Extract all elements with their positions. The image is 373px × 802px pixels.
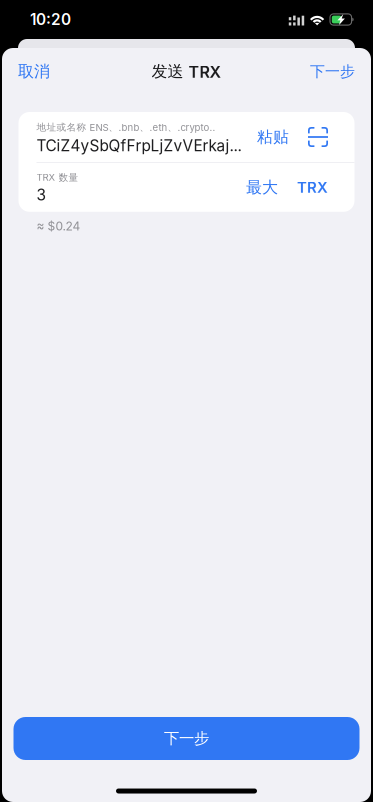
staticText: TCiZ4ySbQfFrpLjZvVErkaj... xyxy=(36,136,241,155)
button[interactable]: 下一步 xyxy=(294,52,371,91)
staticText: 下一步 xyxy=(164,729,209,748)
staticText: 3 xyxy=(36,186,45,204)
staticText: TRX 数量 xyxy=(36,171,78,184)
staticText: 取消 xyxy=(18,61,50,82)
staticText: TRX xyxy=(297,178,328,196)
staticText: 下一步 xyxy=(310,62,355,81)
button[interactable]: 取消 xyxy=(2,51,66,92)
button[interactable]: 粘贴 xyxy=(257,127,289,147)
staticText: ≈ $0.24 xyxy=(36,219,80,233)
button[interactable]: 扫描二维码 xyxy=(289,127,328,147)
staticText: 粘贴 xyxy=(257,127,289,147)
staticText: 地址或名称 ENS、.bnb、.eth、.crypto.. xyxy=(36,121,215,133)
staticText: 最大 xyxy=(246,177,278,197)
staticText: 10:20 xyxy=(30,10,71,29)
button[interactable]: 最大 xyxy=(246,177,278,197)
button[interactable]: 下一步 xyxy=(13,717,359,760)
staticText: 发送 TRX xyxy=(151,61,221,82)
